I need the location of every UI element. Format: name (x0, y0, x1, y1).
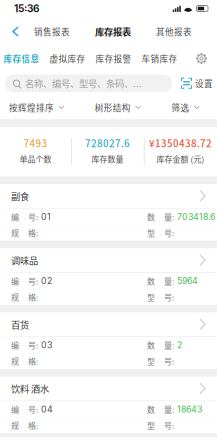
staticText: 型 (147, 355, 155, 367)
staticText: 单品个数 (19, 153, 51, 165)
staticText: 格: (28, 291, 38, 303)
staticText: 7493 (23, 136, 47, 150)
staticText: 规 (11, 419, 19, 431)
staticText: 副食 (11, 189, 29, 203)
button[interactable]: 库存报表 (91, 22, 135, 41)
staticText: 数 (147, 275, 155, 287)
staticText: 格: (28, 419, 38, 431)
button[interactable]: 返回 (0, 22, 25, 41)
staticText: 调味品 (11, 253, 38, 267)
button[interactable]: 虚拟库存 (49, 49, 86, 67)
staticText: 号: (164, 355, 174, 367)
staticText: 编 (11, 403, 19, 415)
staticText: 库存报表 (95, 25, 131, 38)
staticText: 库存报警 (95, 52, 131, 65)
staticText: 数 (147, 403, 155, 415)
staticText: 01 (41, 211, 51, 222)
button[interactable]: 设置 (192, 50, 211, 67)
staticText: 虚拟库存 (49, 52, 85, 65)
staticText: 15:36 (14, 2, 39, 15)
staticText: 格: (28, 355, 38, 367)
staticText: 销售报表 (34, 25, 70, 38)
staticText: 703418.6 (177, 211, 215, 222)
button[interactable]: 调味品 (0, 248, 217, 272)
staticText: 量: (164, 403, 174, 415)
staticText: 号: (164, 291, 174, 303)
staticText: 数 (147, 211, 155, 222)
staticText: 量: (164, 275, 174, 287)
staticText: 设置 (195, 77, 213, 89)
staticText: 型 (147, 419, 155, 431)
button[interactable]: 筛选 (168, 96, 203, 119)
staticText: 2 (177, 340, 182, 350)
staticText: 规 (11, 227, 19, 238)
staticText: 号: (28, 211, 38, 222)
staticText: 04 (41, 404, 53, 415)
staticText: 型 (147, 291, 155, 303)
staticText: 名称、编号、型号、条码、... (25, 76, 142, 90)
button[interactable]: 副食 (0, 184, 217, 208)
staticText: 量: (164, 211, 174, 222)
staticText: 02 (41, 276, 52, 286)
button[interactable]: 树形结构 (92, 96, 144, 119)
button[interactable]: 车销库存 (141, 49, 178, 67)
button[interactable]: 名称、编号、型号、条码、... (5, 74, 172, 92)
staticText: ¥1350438.72 (149, 136, 212, 150)
staticText: 号: (164, 227, 174, 238)
staticText: 号: (28, 339, 38, 351)
staticText: 03 (41, 340, 52, 350)
staticText: 树形结构 (95, 101, 131, 114)
staticText: 百货 (11, 318, 29, 331)
staticText: 数 (147, 339, 155, 351)
button[interactable]: 设置 (181, 74, 213, 92)
button[interactable]: 百货 (0, 312, 217, 336)
staticText: 编 (11, 339, 19, 351)
button[interactable]: 库存信息 (3, 49, 40, 67)
staticText: 车销库存 (141, 52, 177, 65)
staticText: 筛选 (171, 101, 189, 114)
staticText: 饮料 酒水 (11, 382, 49, 395)
staticText: 库存信息 (3, 52, 39, 65)
staticText: 型 (147, 227, 155, 238)
button[interactable]: 饮料 酒水 (0, 377, 217, 401)
button[interactable]: 库存报警 (95, 49, 132, 67)
staticText: 编 (11, 275, 19, 287)
staticText: 规 (11, 355, 19, 367)
staticText: 18643 (177, 404, 202, 415)
staticText: 号: (28, 275, 38, 287)
staticText: 编 (11, 211, 19, 222)
staticText: 格: (28, 227, 38, 238)
staticText: 728027.6 (85, 136, 130, 150)
button[interactable]: 其他报表 (152, 22, 196, 41)
staticText: 号: (28, 403, 38, 415)
button[interactable]: 按辉煌排序 (6, 96, 68, 119)
staticText: 其他报表 (156, 25, 192, 38)
staticText: 库存金额 (元) (156, 153, 204, 165)
staticText: 量: (164, 339, 174, 351)
staticText: 按辉煌排序 (9, 101, 54, 114)
staticText: 规 (11, 291, 19, 303)
staticText: 库存数量 (91, 153, 123, 165)
button[interactable]: 销售报表 (30, 22, 74, 41)
staticText: 5964 (177, 276, 198, 286)
staticText: 号: (164, 419, 174, 431)
